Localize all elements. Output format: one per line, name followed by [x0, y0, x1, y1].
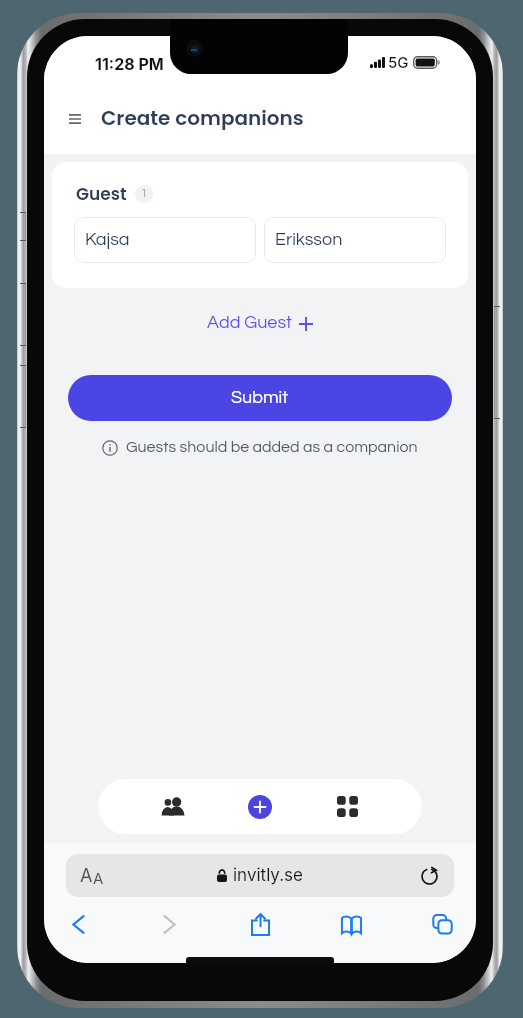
staticText: A — [93, 869, 104, 887]
button[interactable]: Reload — [417, 864, 441, 888]
button[interactable]: Menu — [57, 101, 93, 137]
staticText: Guest — [76, 182, 127, 206]
staticText: invitly.se — [233, 865, 303, 886]
staticText: Eriksson — [275, 230, 343, 249]
button[interactable]: Share — [240, 904, 280, 944]
staticText: Add Guest — [207, 313, 292, 332]
button[interactable]: Guests — [145, 779, 201, 834]
staticText: 1 — [141, 188, 148, 199]
button[interactable]: Kajsa — [74, 217, 256, 263]
button[interactable]: Add Guest — [199, 309, 321, 338]
button[interactable]: Back — [58, 904, 98, 944]
button[interactable]: Eriksson — [264, 217, 446, 263]
staticText: Guests should be added as a companion — [126, 439, 418, 455]
staticText: Kajsa — [85, 230, 130, 249]
staticText: 5G — [388, 53, 409, 71]
button[interactable]: Forward — [149, 904, 189, 944]
staticText: A — [80, 865, 93, 887]
staticText: Submit — [231, 388, 289, 407]
button[interactable]: A — [66, 854, 454, 897]
staticText: Create companions — [101, 104, 304, 132]
staticText: 11:28 PM — [95, 54, 164, 73]
button[interactable]: Dashboard — [319, 779, 375, 834]
button[interactable]: Tabs — [422, 904, 462, 944]
button[interactable]: Submit — [68, 375, 452, 421]
button[interactable]: Add — [248, 795, 272, 819]
button[interactable]: Bookmarks — [331, 904, 371, 944]
